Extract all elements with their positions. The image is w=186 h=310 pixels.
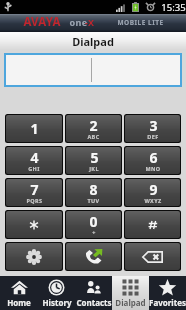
staticText: 3 <box>149 116 158 135</box>
staticText: Home <box>7 297 31 308</box>
staticText: 4 <box>30 148 39 167</box>
button[interactable]: 4 <box>6 147 62 174</box>
staticText: JKL <box>89 165 99 172</box>
button[interactable] <box>6 211 62 238</box>
staticText: History <box>42 297 72 308</box>
button[interactable]: Favorites <box>149 276 186 310</box>
button[interactable]: Backspace <box>125 243 180 270</box>
button[interactable]: 1 <box>6 115 62 142</box>
staticText: TUV <box>87 197 100 204</box>
staticText: + <box>92 229 96 236</box>
button[interactable]: 9 <box>125 179 180 206</box>
button[interactable] <box>4 53 182 87</box>
button[interactable]: 7 <box>6 179 62 206</box>
staticText: 9 <box>149 180 158 199</box>
button[interactable]: Dialpad <box>112 276 149 310</box>
staticText: 0 <box>89 212 98 231</box>
staticText: 6 <box>149 148 158 167</box>
staticText: 7 <box>30 180 39 199</box>
staticText: 5 <box>90 148 99 167</box>
button[interactable]: Settings <box>6 243 62 270</box>
button[interactable] <box>125 211 180 238</box>
staticText: DEF <box>147 133 159 140</box>
staticText: 15:35 <box>161 1 186 14</box>
staticText: -X <box>85 16 94 28</box>
button[interactable]: 8 <box>66 179 121 206</box>
button[interactable]: Home <box>0 276 38 310</box>
button[interactable]: History <box>38 276 75 310</box>
button[interactable]: Call <box>66 243 121 270</box>
staticText: AVAYA <box>23 14 61 30</box>
button[interactable]: Contacts <box>75 276 112 310</box>
staticText: Dialpad <box>72 34 114 49</box>
staticText: MOBILE LITE <box>117 18 164 27</box>
staticText: WXYZ <box>144 197 162 204</box>
staticText: 8 <box>89 180 98 199</box>
staticText: one <box>69 16 88 28</box>
staticText: GHI <box>28 165 40 172</box>
staticText: MNO <box>145 165 161 172</box>
staticText: PQRS <box>26 197 43 204</box>
staticText: 2 <box>89 116 98 135</box>
staticText: Dialpad <box>115 297 146 308</box>
staticText: 1 <box>30 119 39 138</box>
button[interactable]: 2 <box>66 115 121 142</box>
staticText: ABC <box>87 133 100 140</box>
button[interactable]: 5 <box>66 147 121 174</box>
button[interactable]: 3 <box>125 115 180 142</box>
button[interactable]: 0 <box>66 211 121 238</box>
staticText: Contacts <box>76 297 112 308</box>
button[interactable]: 6 <box>125 147 180 174</box>
staticText: Favorites <box>149 297 186 308</box>
